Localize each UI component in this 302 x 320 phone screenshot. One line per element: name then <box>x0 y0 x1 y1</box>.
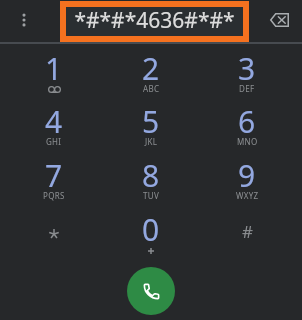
button[interactable]: *#*#*4636#*#* <box>66 7 243 36</box>
button[interactable]: Call <box>127 267 175 315</box>
button[interactable]: 6 <box>199 93 295 146</box>
staticText: ABC <box>143 83 160 94</box>
staticText: 1 <box>45 48 63 89</box>
button[interactable]: Star <box>6 201 102 254</box>
button[interactable]: 1 <box>6 40 102 93</box>
button[interactable]: Backspace <box>260 0 298 40</box>
button[interactable]: 0 <box>103 201 199 254</box>
staticText: 2 <box>142 48 160 89</box>
staticText: *#*#*4636#*#* <box>74 6 235 35</box>
button[interactable]: 2 <box>103 40 199 93</box>
staticText: 0 <box>142 209 160 250</box>
button[interactable]: 9 <box>199 147 295 200</box>
staticText: PQRS <box>43 190 65 201</box>
button[interactable]: 3 <box>199 40 295 93</box>
staticText: TUV <box>143 190 159 201</box>
staticText: 6 <box>238 101 256 142</box>
staticText: MNO <box>237 136 258 147</box>
staticText: 5 <box>142 101 160 142</box>
staticText: # <box>242 220 253 243</box>
button[interactable]: # <box>199 201 295 254</box>
staticText: 9 <box>238 155 256 196</box>
staticText: WXYZ <box>236 190 259 201</box>
staticText: 7 <box>45 155 63 196</box>
staticText: DEF <box>239 83 255 94</box>
button[interactable]: 8 <box>103 147 199 200</box>
button[interactable]: 4 <box>6 93 102 146</box>
staticText: GHI <box>46 136 62 147</box>
button[interactable]: 7 <box>6 147 102 200</box>
staticText: JKL <box>145 136 158 147</box>
staticText: 8 <box>142 155 160 196</box>
button[interactable]: More options <box>6 0 42 39</box>
button[interactable]: 5 <box>103 93 199 146</box>
staticText: 4 <box>45 101 63 142</box>
staticText: 3 <box>238 48 256 89</box>
